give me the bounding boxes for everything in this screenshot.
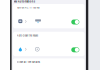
staticText: Close all the curtains [17,61,40,64]
staticText: My Automations [14,0,35,3]
button[interactable]: Turn on AC if too hot [12,4,87,28]
staticText: Auto clean the house [17,34,38,37]
button[interactable]: Close all the curtains [12,58,87,70]
button[interactable]: Auto clean the house [12,32,87,56]
staticText: Turn on AC if too hot [17,6,40,9]
